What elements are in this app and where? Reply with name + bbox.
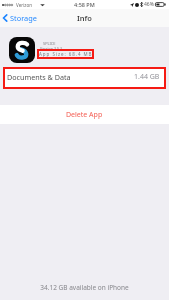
staticText: App Size: 68.4 MB [39, 51, 93, 57]
staticText: 4:58 PM [74, 1, 95, 8]
staticText: 46% [144, 1, 154, 8]
staticText: 34.12 GB available on iPhone [0, 283, 169, 292]
staticText: Verizon [16, 2, 33, 8]
button[interactable]: Documents & Data [5, 69, 164, 87]
staticText: Info [77, 13, 92, 23]
staticText: Version 3.5.3 [40, 46, 63, 51]
staticText: Delete App [66, 110, 103, 120]
button[interactable]: Storage [0, 10, 42, 26]
staticText: SPLICE [43, 41, 56, 46]
staticText: Storage [10, 13, 37, 23]
staticText: 1.44 GB [134, 72, 160, 82]
button[interactable]: Delete App [0, 105, 169, 124]
staticText: Documents & Data [7, 72, 71, 82]
